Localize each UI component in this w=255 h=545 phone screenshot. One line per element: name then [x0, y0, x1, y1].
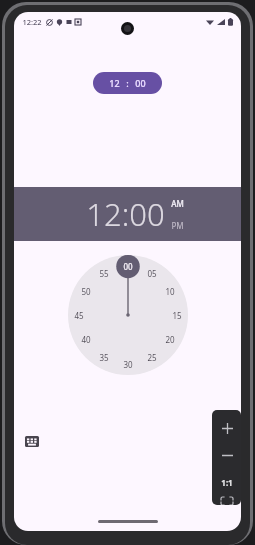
- staticText: 1:1: [221, 477, 233, 488]
- staticText: 20: [165, 334, 175, 345]
- staticText: 35: [99, 352, 109, 363]
- staticText: :: [126, 77, 129, 89]
- staticText: 50: [81, 286, 91, 297]
- staticText: 12: [109, 77, 120, 89]
- staticText: 00: [135, 77, 146, 89]
- staticText: 55: [99, 268, 109, 279]
- staticText: 25: [147, 352, 157, 363]
- staticText: 10: [165, 286, 175, 297]
- staticText: 12:22: [22, 17, 42, 27]
- staticText: 15: [172, 310, 182, 321]
- button[interactable]: Zoom in: [215, 416, 239, 440]
- staticText: 40: [81, 334, 91, 345]
- staticText: 05: [147, 268, 157, 279]
- button[interactable]: 12: [93, 72, 162, 94]
- staticText: 30: [123, 359, 133, 370]
- staticText: 45: [74, 310, 84, 321]
- button[interactable]: AM: [170, 197, 185, 210]
- button[interactable]: 1:1: [215, 470, 239, 494]
- staticText: PM: [171, 220, 184, 231]
- staticText: AM: [171, 198, 184, 209]
- button[interactable]: PM: [170, 219, 185, 232]
- button[interactable]: 12:00: [86, 193, 165, 235]
- button[interactable]: Fit to screen: [215, 497, 239, 505]
- button[interactable]: Switch to text input: [20, 429, 44, 453]
- staticText: 00: [123, 261, 133, 272]
- staticText: 12:00: [86, 193, 165, 235]
- button[interactable]: Zoom out: [215, 443, 239, 467]
- button[interactable]: Minute picker dial: [68, 255, 188, 375]
